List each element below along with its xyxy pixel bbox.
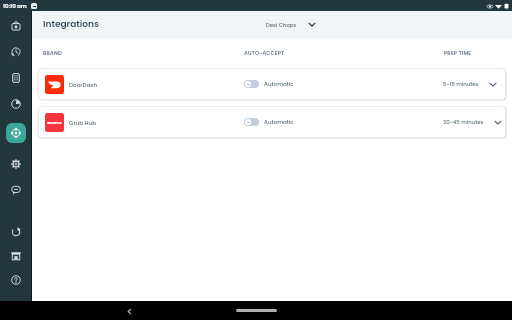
button[interactable]: Home [236,309,277,312]
button[interactable]: 5-15 minutes [443,80,497,88]
button[interactable]: Help [0,269,31,291]
button[interactable]: Sync [0,221,31,243]
staticText: 5-15 minutes [443,80,479,88]
staticText: Automatic [264,80,294,88]
staticText: Automatic [264,118,294,126]
button[interactable]: GRUBHUB [38,106,506,138]
staticText: Integrations [43,18,99,31]
staticText: Desi Chops [266,21,296,28]
staticText: DoorDash [69,81,98,89]
button[interactable]: 30-45 minutes [443,118,502,126]
button[interactable]: History [0,41,31,63]
button[interactable]: Messages [0,179,31,201]
staticText: AUTO-ACCEPT [244,50,285,57]
button[interactable]: Reports [0,93,31,115]
staticText: 30-45 minutes [443,118,484,126]
staticText: GRUBHUB [47,121,62,125]
button[interactable]: Orders [0,15,31,37]
button[interactable]: DoorDash [38,68,506,100]
button[interactable]: Integrations [6,123,26,143]
button[interactable]: Back [124,306,134,316]
staticText: Grub Hub [69,119,97,127]
button[interactable]: Store [0,245,31,267]
button[interactable]: Desi Chops [266,21,316,28]
button[interactable]: Auto accept Grub Hub [244,118,259,126]
button[interactable]: Receipts [0,67,31,89]
staticText: BRAND [43,50,62,57]
staticText: 10:10 am [3,2,27,10]
button[interactable]: Auto accept DoorDash [244,80,259,88]
button[interactable]: Settings [0,153,31,175]
staticText: PREP TIME [444,50,472,57]
